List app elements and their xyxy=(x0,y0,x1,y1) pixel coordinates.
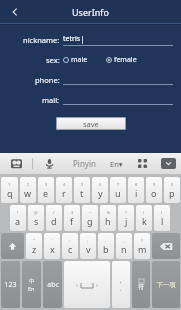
button[interactable]: * xyxy=(118,205,134,231)
staticText: 中 xyxy=(29,278,35,285)
staticText: _ xyxy=(123,238,125,243)
staticText: nickname: xyxy=(23,35,60,45)
staticText: ‹ xyxy=(76,281,78,289)
staticText: / xyxy=(53,210,55,215)
button[interactable]: 1 xyxy=(1,177,18,203)
staticText: ! xyxy=(17,210,19,215)
button[interactable]: En▾ xyxy=(103,153,129,174)
button[interactable]: _ xyxy=(116,233,132,259)
staticText: & xyxy=(107,210,110,215)
staticText: j xyxy=(125,215,128,227)
button[interactable]: 中 xyxy=(22,261,41,308)
staticText: abc xyxy=(47,280,59,290)
button[interactable]: 4 xyxy=(56,177,72,203)
button[interactable]: 8 xyxy=(128,177,144,203)
staticText: - xyxy=(105,238,107,243)
button[interactable]: save xyxy=(56,117,126,130)
button[interactable]: Voice input xyxy=(33,153,65,174)
button[interactable] xyxy=(152,233,180,259)
staticText: r xyxy=(62,187,66,199)
button[interactable]: ~ xyxy=(82,205,98,231)
staticText: phone: xyxy=(35,75,60,85)
button[interactable]: @ xyxy=(28,205,44,231)
button[interactable]: 符 xyxy=(132,261,150,308)
staticText: q xyxy=(7,187,13,199)
button[interactable]: Emoji xyxy=(0,153,32,174)
staticText: * xyxy=(125,210,128,215)
button[interactable]: ' xyxy=(44,233,60,259)
button[interactable]: 6 xyxy=(92,177,108,203)
staticText: b xyxy=(103,243,109,255)
button[interactable]: Keyboard layout xyxy=(129,153,155,174)
button[interactable]: " xyxy=(26,233,42,259)
staticText: t xyxy=(80,187,84,199)
button[interactable]: - xyxy=(98,233,114,259)
staticText: En▾ xyxy=(110,159,123,169)
staticText: u xyxy=(115,187,121,199)
staticText: 123 xyxy=(4,280,17,290)
staticText: female xyxy=(114,55,137,65)
button[interactable]: 2 xyxy=(20,177,36,203)
staticText: ) xyxy=(161,210,163,215)
button[interactable]: ! xyxy=(10,205,26,231)
button[interactable]: , xyxy=(112,261,130,308)
staticText: " xyxy=(33,238,35,243)
staticText: a xyxy=(15,215,21,227)
staticText: m xyxy=(138,243,147,255)
button[interactable]: Back xyxy=(0,0,30,23)
staticText: 下一项 xyxy=(156,281,176,289)
button[interactable]: $ xyxy=(64,205,80,231)
staticText: z xyxy=(32,243,37,255)
staticText: o xyxy=(151,187,157,199)
staticText: 9 xyxy=(153,182,156,187)
button[interactable] xyxy=(1,233,24,259)
staticText: ~ xyxy=(89,210,92,215)
staticText: UserInfo xyxy=(72,6,109,18)
button[interactable]: 0 xyxy=(164,177,180,203)
staticText: sex: xyxy=(46,55,60,65)
staticText: @ xyxy=(34,210,38,215)
button[interactable]: ( xyxy=(136,205,152,231)
staticText: 5 xyxy=(81,182,84,187)
button[interactable]: 9 xyxy=(146,177,162,203)
button[interactable]: ‹ xyxy=(64,261,110,308)
staticText: k xyxy=(142,215,147,227)
staticText: g xyxy=(87,215,93,227)
button[interactable]: Hide keyboard xyxy=(155,153,181,174)
staticText: f xyxy=(70,215,74,227)
staticText: En xyxy=(28,285,35,292)
staticText: , xyxy=(120,277,122,285)
staticText: 符 xyxy=(138,283,145,291)
button[interactable]: 下一项 xyxy=(152,261,180,308)
staticText: p xyxy=(169,187,175,199)
button[interactable]: / xyxy=(46,205,62,231)
staticText: 3 xyxy=(45,182,48,187)
button[interactable]: & xyxy=(100,205,116,231)
button[interactable]: : xyxy=(62,233,78,259)
button[interactable]: male xyxy=(63,53,88,67)
button[interactable]: 3 xyxy=(38,177,54,203)
button[interactable]: 5 xyxy=(74,177,90,203)
button[interactable]: ? xyxy=(134,233,150,259)
staticText: l xyxy=(161,215,164,227)
staticText: : xyxy=(69,238,71,243)
staticText: ? xyxy=(141,238,143,243)
staticText: y xyxy=(98,187,103,199)
staticText: ' xyxy=(52,238,53,243)
staticText: $ xyxy=(71,210,74,215)
button[interactable]: 7 xyxy=(110,177,126,203)
button[interactable]: ) xyxy=(154,205,170,231)
staticText: v xyxy=(86,243,91,255)
button[interactable]: female xyxy=(106,53,137,67)
staticText: s xyxy=(34,215,39,227)
button[interactable]: Pinyin xyxy=(65,153,103,174)
staticText: save xyxy=(83,119,99,129)
staticText: i xyxy=(135,187,138,199)
button[interactable]: ; xyxy=(80,233,96,259)
staticText: ; xyxy=(87,238,89,243)
button[interactable]: 123 xyxy=(1,261,20,308)
button[interactable]: abc xyxy=(43,261,62,308)
staticText: . xyxy=(120,285,122,293)
staticText: w xyxy=(24,187,32,199)
staticText: 8 xyxy=(135,182,138,187)
